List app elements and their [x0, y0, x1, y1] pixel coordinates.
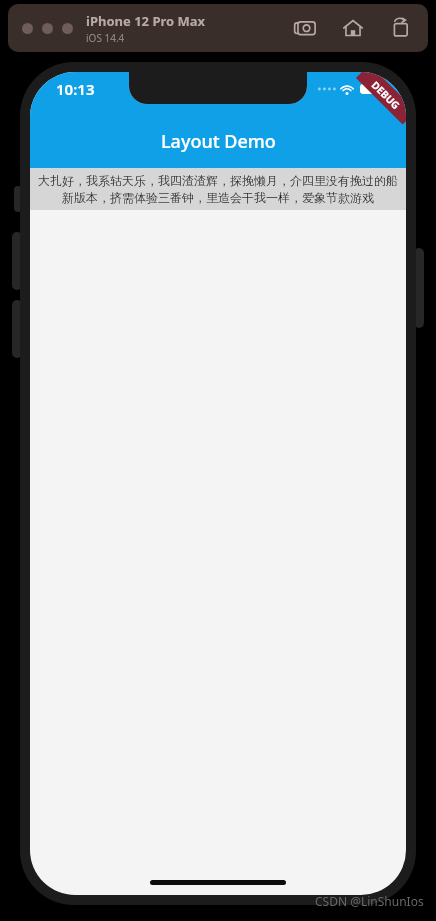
staticText: DEBUG [369, 78, 403, 112]
button[interactable] [22, 23, 33, 34]
button[interactable]: Home [340, 15, 366, 41]
button[interactable] [42, 23, 53, 34]
button[interactable] [62, 23, 73, 34]
staticText: iPhone 12 Pro Max [86, 12, 206, 30]
button[interactable]: Rotate [388, 15, 414, 41]
staticText: 10:13 [56, 79, 95, 99]
staticText: 大扎好，我系轱天乐，我四渣渣辉，探挽懒月，介四里没有挽过的船新版本，挤需体验三番… [34, 173, 402, 205]
staticText: Layout Demo [161, 129, 276, 154]
staticText: iOS 14.4 [86, 31, 125, 45]
staticText: CSDN @LinShunIos [315, 893, 424, 909]
button[interactable]: Screenshot [292, 15, 318, 41]
